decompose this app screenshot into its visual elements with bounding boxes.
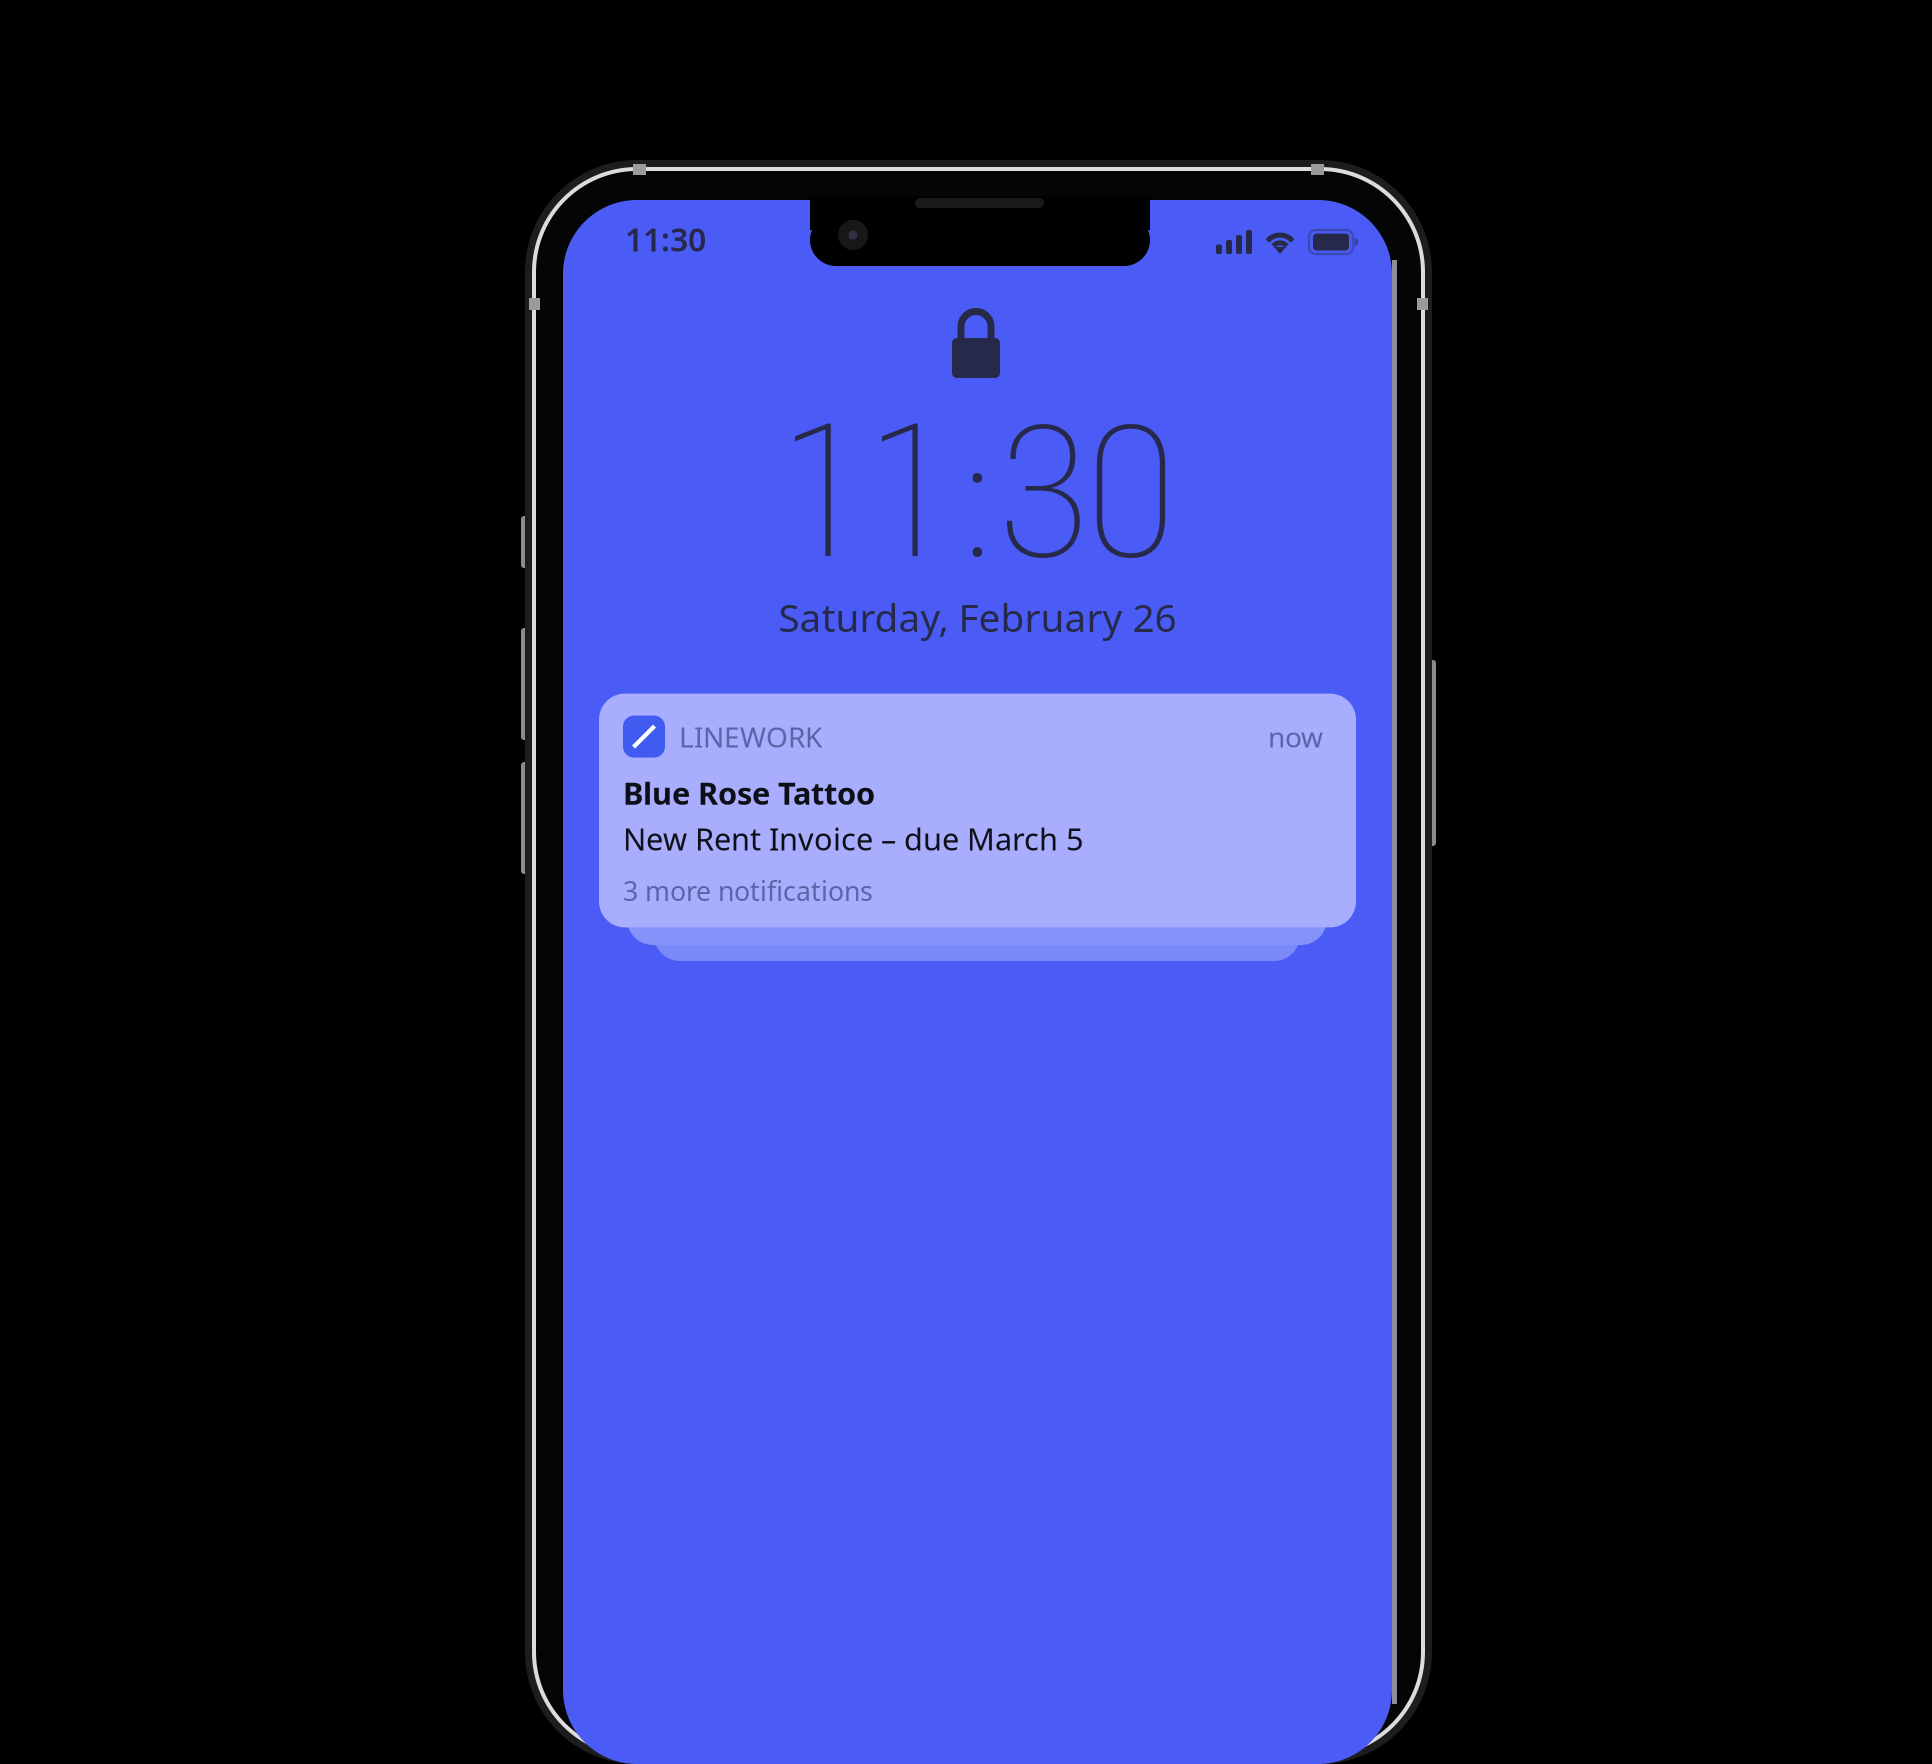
staticText: 3 more notifications xyxy=(623,873,873,908)
staticText: Blue Rose Tattoo xyxy=(623,773,875,813)
staticText: now xyxy=(1268,718,1323,755)
button[interactable]: LINEWORK xyxy=(599,694,1356,927)
staticText: Saturday, February 26 xyxy=(778,591,1176,643)
staticText: LINEWORK xyxy=(679,718,822,755)
staticText: 11:30 xyxy=(781,385,1173,601)
staticText: New Rent Invoice – due March 5 xyxy=(623,818,1084,859)
staticText: 11:30 xyxy=(625,218,706,260)
